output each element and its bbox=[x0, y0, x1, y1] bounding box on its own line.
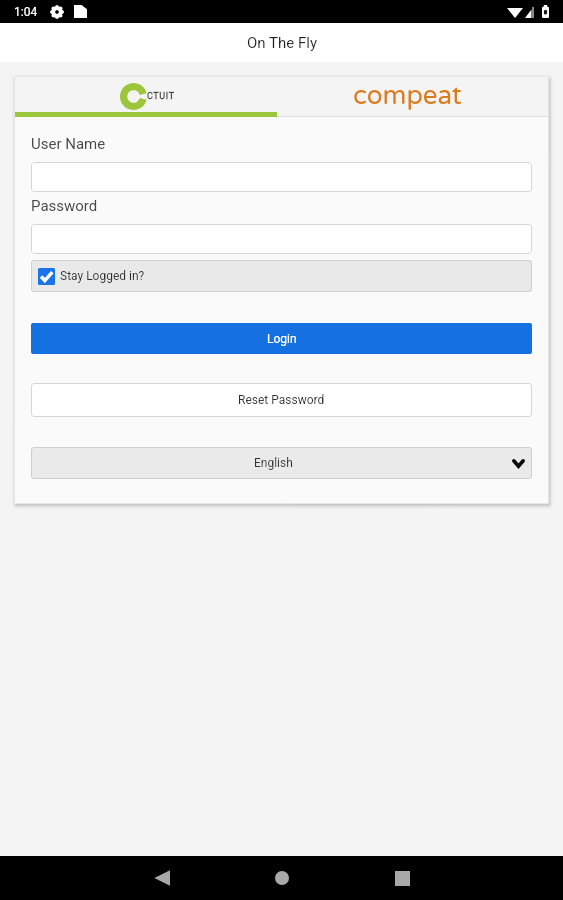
staticText: On The Fly bbox=[247, 34, 317, 52]
staticText: Reset Password bbox=[238, 393, 325, 407]
button[interactable]: CTUIT bbox=[14, 76, 277, 117]
staticText: Password bbox=[31, 197, 98, 215]
staticText: 1:04 bbox=[14, 5, 38, 19]
button[interactable]: Reset Password bbox=[31, 383, 532, 417]
button[interactable] bbox=[31, 224, 532, 254]
staticText: CTUIT bbox=[147, 91, 175, 102]
button[interactable]: Recent apps bbox=[378, 856, 426, 900]
button[interactable]: Stay Logged in? bbox=[31, 260, 532, 292]
button[interactable]: Home bbox=[258, 856, 306, 900]
button[interactable] bbox=[31, 162, 532, 192]
staticText: Stay Logged in? bbox=[60, 269, 145, 283]
button[interactable]: Back bbox=[138, 856, 186, 900]
staticText: Login bbox=[267, 332, 297, 346]
button[interactable]: Login bbox=[31, 323, 532, 354]
staticText: User Name bbox=[31, 135, 106, 153]
staticText: compeat bbox=[353, 80, 462, 111]
button[interactable]: compeat bbox=[277, 76, 549, 117]
button[interactable]: English bbox=[31, 447, 532, 479]
staticText: English bbox=[254, 456, 293, 470]
